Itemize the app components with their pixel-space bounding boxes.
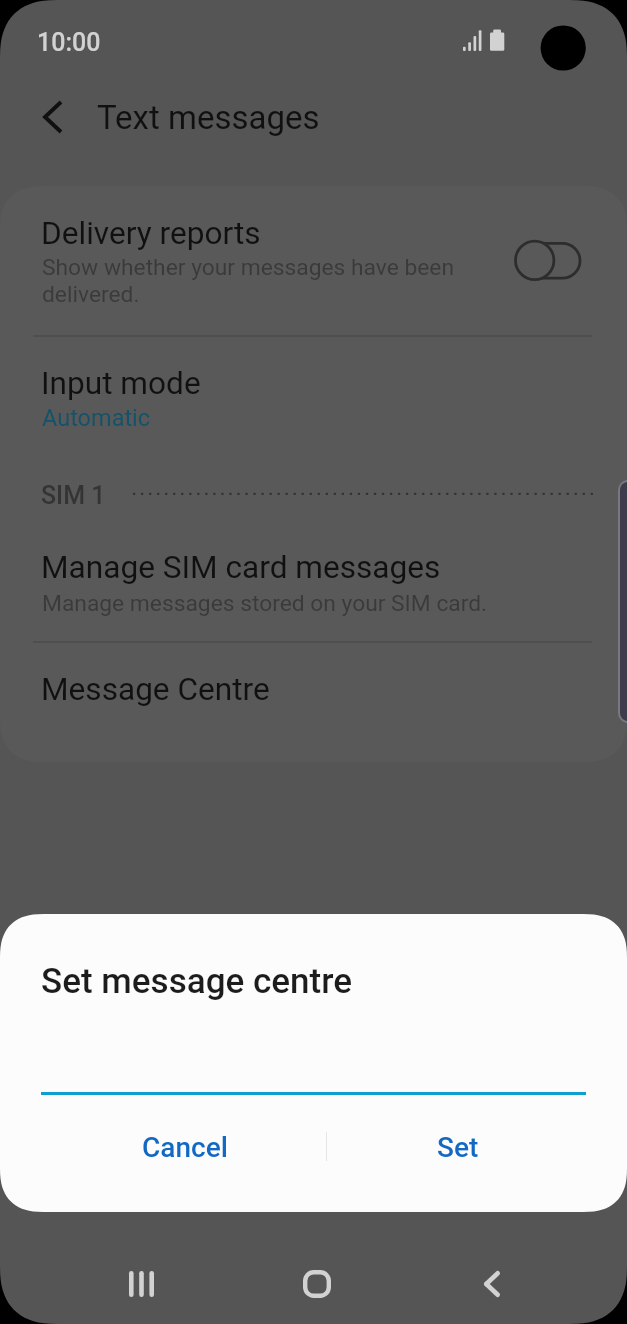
button[interactable]: Message Centre [0, 643, 627, 762]
staticText: Cancel [142, 1131, 228, 1164]
button[interactable]: Back [452, 1244, 532, 1324]
button[interactable]: Recent apps [101, 1244, 181, 1324]
button[interactable]: Set [327, 1112, 603, 1178]
button[interactable]: Navigate up [21, 88, 79, 146]
staticText: Manage messages stored on your SIM card. [42, 590, 488, 617]
button[interactable]: Delivery reports [0, 186, 627, 336]
staticText: Automatic [42, 404, 151, 432]
button[interactable]: Input mode [0, 337, 627, 462]
staticText: Text messages [97, 98, 320, 137]
staticText: SIM 1 [41, 481, 106, 510]
staticText: Input mode [41, 365, 201, 402]
staticText: Set message centre [41, 961, 353, 1002]
button[interactable]: Cancel [44, 1112, 324, 1178]
staticText: Message Centre [41, 671, 270, 708]
button[interactable]: Manage SIM card messages [0, 516, 627, 642]
staticText: 10:00 [37, 28, 101, 57]
staticText: Set [437, 1131, 479, 1164]
button[interactable]: Delivery reports [506, 232, 590, 290]
staticText: Show whether your messages have been del… [42, 254, 455, 307]
staticText: Delivery reports [41, 215, 261, 252]
button[interactable]: Home [277, 1244, 357, 1324]
staticText: Manage SIM card messages [41, 549, 441, 586]
